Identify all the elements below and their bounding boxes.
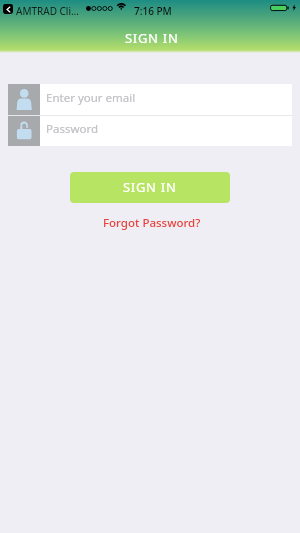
staticText: Forgot Password? [103,215,201,231]
button[interactable]: Enter your email [8,84,292,115]
other: Battery charging [270,4,297,13]
staticText: SIGN IN [123,178,177,196]
staticText: Password [46,121,99,137]
other: Wi-Fi [116,1,128,13]
button[interactable]: SIGN IN [70,172,230,203]
button[interactable]: Password [8,115,292,146]
staticText: SIGN IN [125,29,179,47]
other: Signal strength [86,6,113,11]
button[interactable]: Forgot Password? [97,212,207,234]
button[interactable]: Back [3,4,13,14]
staticText: Enter your email [46,90,136,106]
staticText: AMTRAD Cli… [16,4,79,18]
staticText: 7:16 PM [134,4,172,18]
